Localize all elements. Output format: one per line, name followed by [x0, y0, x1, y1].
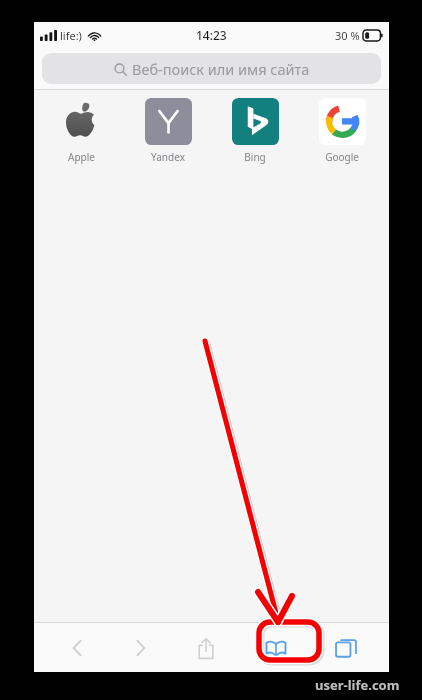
- button[interactable]: Tabs: [321, 626, 371, 670]
- staticText: Bing: [244, 150, 266, 164]
- button[interactable]: Yandex: [131, 98, 205, 164]
- staticText: Apple: [68, 150, 95, 164]
- button[interactable]: Bookmarks: [245, 626, 307, 670]
- button[interactable]: Share: [181, 626, 231, 670]
- button[interactable]: Apple: [44, 98, 118, 164]
- button[interactable]: Bing: [218, 98, 292, 164]
- staticText: Google: [325, 150, 359, 164]
- staticText: Yandex: [151, 150, 185, 164]
- staticText: user-life.com: [315, 676, 400, 694]
- button[interactable]: Back: [52, 626, 102, 670]
- button[interactable]: Веб-поиск или имя сайта: [42, 53, 381, 84]
- staticText: 30 %: [335, 28, 360, 43]
- staticText: life:): [60, 28, 82, 43]
- staticText: Веб-поиск или имя сайта: [132, 59, 310, 79]
- button[interactable]: Forward: [116, 626, 166, 670]
- staticText: 14:23: [196, 27, 227, 43]
- button[interactable]: Google: [305, 98, 379, 164]
